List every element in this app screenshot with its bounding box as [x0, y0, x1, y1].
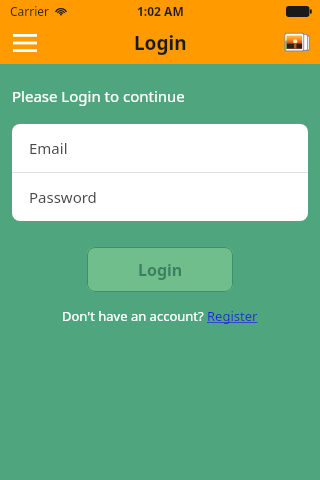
- staticText: Login: [138, 259, 183, 281]
- button[interactable]: Gallery: [280, 26, 314, 60]
- staticText: 1:02 AM: [137, 3, 184, 19]
- button[interactable]: Login: [87, 247, 233, 292]
- staticText: Please Login to continue: [12, 86, 185, 106]
- button[interactable]: Password: [12, 173, 308, 221]
- staticText: Login: [134, 30, 187, 56]
- staticText: Carrier: [10, 3, 50, 19]
- button[interactable]: Menu: [8, 26, 42, 60]
- staticText: Email: [29, 138, 68, 158]
- button[interactable]: Email: [12, 124, 308, 172]
- staticText: Password: [29, 187, 97, 207]
- button[interactable]: Don't have an account? Register: [58, 305, 262, 327]
